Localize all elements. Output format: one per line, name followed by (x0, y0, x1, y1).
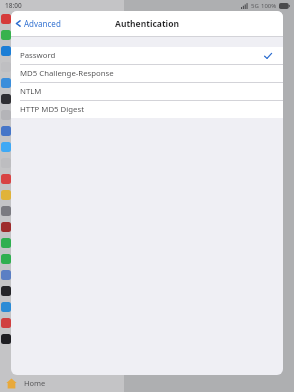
other: App icon (1, 206, 11, 216)
other: App icon (1, 142, 11, 152)
other: App icon (1, 78, 11, 88)
staticText: 18:00 (5, 1, 22, 10)
other: App icon (1, 318, 11, 328)
staticText: NTLM (20, 86, 42, 97)
other: App icon (1, 302, 11, 312)
other: App icon (1, 190, 11, 200)
other: App icon (1, 222, 11, 232)
other: App icon (1, 286, 11, 296)
button[interactable]: Home (0, 374, 124, 392)
staticText: 5G (251, 2, 259, 10)
button[interactable]: HTTP MD5 Digest (11, 101, 283, 118)
button[interactable]: MD5 Challenge-Response (11, 65, 283, 82)
button[interactable]: NTLM (11, 83, 283, 100)
other: App icon (1, 30, 11, 40)
staticText: HTTP MD5 Digest (20, 104, 85, 115)
other: App icon (1, 94, 11, 104)
other: App icon (1, 254, 11, 264)
button[interactable]: Advanced (11, 11, 67, 36)
other: App icon (1, 334, 11, 344)
staticText: Home (24, 378, 46, 388)
other: App icon (1, 270, 11, 280)
staticText: Authentication (115, 18, 179, 30)
staticText: Password (20, 50, 56, 61)
other: App icon (1, 14, 11, 24)
other: App icon (1, 174, 11, 184)
staticText: MD5 Challenge-Response (20, 68, 114, 79)
staticText: 100% (261, 2, 277, 10)
staticText: Advanced (24, 18, 61, 29)
button[interactable]: Password (11, 47, 283, 64)
other: App icon (1, 126, 11, 136)
other: App icon (1, 238, 11, 248)
other: App icon (1, 46, 11, 56)
